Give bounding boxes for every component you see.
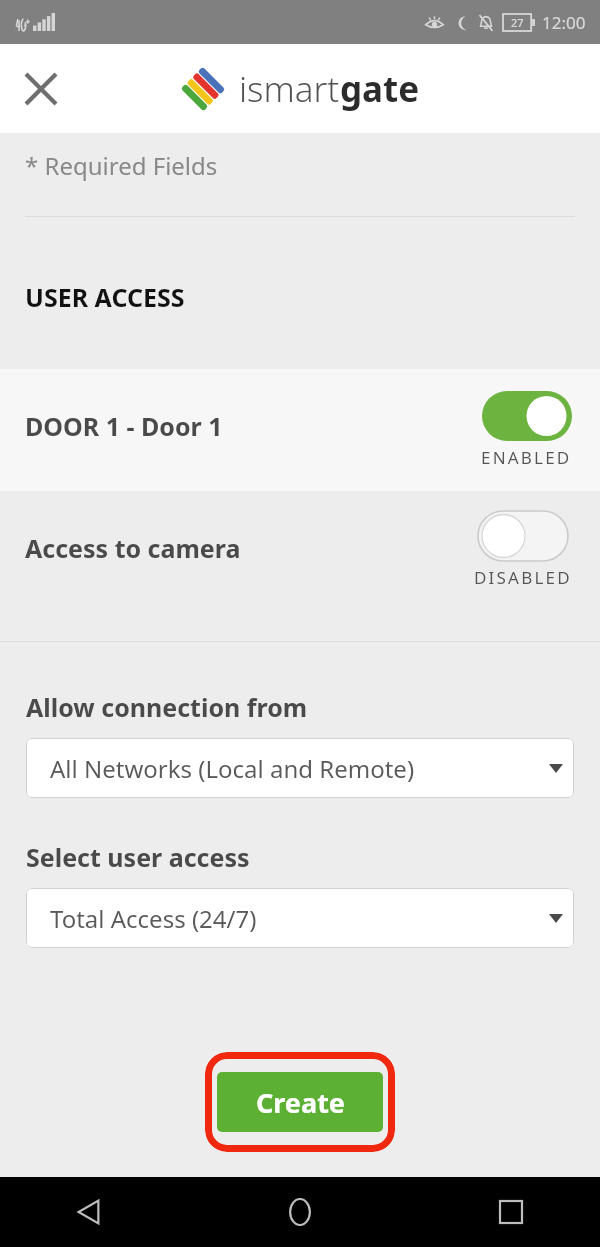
staticText: DOOR 1 - Door 1 (25, 409, 481, 443)
staticText: * Required Fields (25, 149, 218, 182)
staticText: 12:00 (542, 11, 586, 34)
staticText: gate (340, 65, 420, 113)
button[interactable]: All Networks (Local and Remote) (26, 738, 574, 798)
button[interactable]: Disabled toggle (474, 511, 572, 589)
staticText: Allow connection from (26, 690, 308, 724)
button[interactable]: Recent apps (480, 1181, 542, 1243)
button[interactable]: Total Access (24/7) (26, 888, 574, 948)
button[interactable]: Back (58, 1181, 120, 1243)
staticText: All Networks (Local and Remote) (50, 752, 415, 785)
staticText: USER ACCESS (25, 280, 185, 314)
staticText: Total Access (24/7) (50, 902, 257, 935)
button[interactable]: Access to camera (0, 491, 600, 641)
button[interactable]: Home (269, 1181, 331, 1243)
staticText: ismart (239, 65, 340, 113)
button[interactable]: Create (217, 1072, 383, 1132)
button[interactable]: DOOR 1 - Door 1 (0, 369, 600, 491)
staticText: Select user access (26, 840, 250, 874)
staticText: Access to camera (25, 531, 474, 565)
staticText: Create (256, 1084, 345, 1121)
button[interactable]: Close (10, 58, 72, 120)
button[interactable]: Enabled toggle (481, 391, 572, 469)
staticText: ENABLED (481, 446, 572, 469)
staticText: 27 (511, 15, 524, 30)
staticText: DISABLED (474, 566, 572, 589)
